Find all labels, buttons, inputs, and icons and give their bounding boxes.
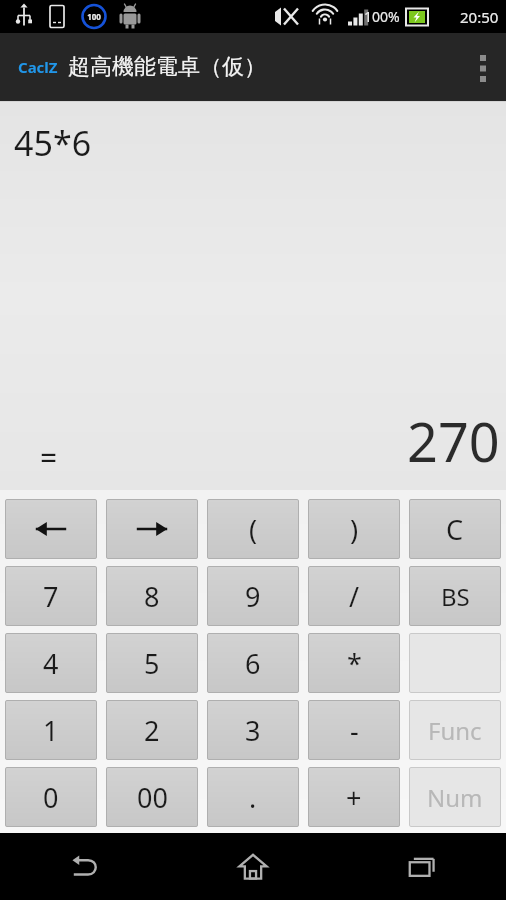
button[interactable]: Func	[409, 700, 501, 760]
staticText: 270	[407, 404, 500, 478]
staticText: C	[446, 511, 464, 548]
button[interactable]: Home	[168, 833, 337, 900]
staticText: 100%	[364, 7, 400, 26]
button[interactable]: 1	[5, 700, 97, 760]
staticText: 7	[43, 578, 59, 615]
button[interactable]: 8	[106, 566, 198, 626]
staticText: 20:50	[460, 7, 499, 27]
staticText: 9	[245, 578, 261, 615]
button[interactable]: +	[308, 767, 400, 827]
staticText: =	[40, 437, 58, 478]
button[interactable]: 2	[106, 700, 198, 760]
button[interactable]: .	[207, 767, 299, 827]
button[interactable]: Move cursor right	[106, 499, 198, 559]
button[interactable]: BS	[409, 566, 501, 626]
staticText: /	[349, 578, 360, 615]
staticText: 00	[137, 779, 168, 816]
staticText: 4	[43, 645, 59, 682]
staticText: 超高機能電卓（仮）	[68, 53, 266, 81]
staticText: *	[347, 645, 362, 682]
staticText: Num	[427, 781, 483, 814]
staticText: 3	[245, 712, 261, 749]
button[interactable]: /	[308, 566, 400, 626]
staticText: 2	[144, 712, 160, 749]
staticText: .	[249, 779, 257, 816]
button[interactable]	[409, 633, 501, 693]
button[interactable]: 9	[207, 566, 299, 626]
button[interactable]: Move cursor left	[5, 499, 97, 559]
staticText: BS	[441, 580, 470, 613]
staticText: 6	[245, 645, 261, 682]
button[interactable]: *	[308, 633, 400, 693]
staticText: +	[346, 779, 362, 816]
button[interactable]: (	[207, 499, 299, 559]
button[interactable]: -	[308, 700, 400, 760]
button[interactable]: 4	[5, 633, 97, 693]
staticText: -	[350, 712, 359, 749]
staticText: 5	[144, 645, 160, 682]
button[interactable]: Recent apps	[337, 833, 506, 900]
staticText: 8	[144, 578, 160, 615]
button[interactable]: More options	[460, 33, 506, 101]
button[interactable]: 3	[207, 700, 299, 760]
button[interactable]: 00	[106, 767, 198, 827]
button[interactable]: 5	[106, 633, 198, 693]
staticText: )	[350, 511, 359, 548]
staticText: CaclZ	[18, 57, 58, 77]
button[interactable]: Back	[0, 833, 168, 900]
staticText: (	[249, 511, 258, 548]
staticText: 100	[85, 11, 103, 22]
staticText: Func	[428, 714, 482, 747]
button[interactable]: )	[308, 499, 400, 559]
button[interactable]: 0	[5, 767, 97, 827]
button[interactable]: 6	[207, 633, 299, 693]
staticText: 0	[43, 779, 59, 816]
button[interactable]: C	[409, 499, 501, 559]
button[interactable]: Num	[409, 767, 501, 827]
staticText: 1	[43, 712, 59, 749]
button[interactable]: 7	[5, 566, 97, 626]
staticText: 45*6	[14, 120, 92, 166]
